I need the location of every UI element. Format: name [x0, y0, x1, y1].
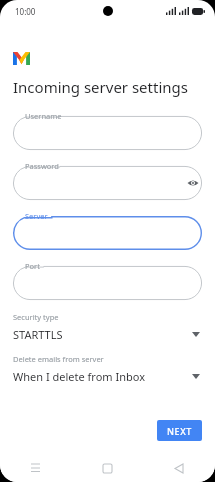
- button[interactable]: Username: [13, 110, 202, 150]
- button[interactable]: Back: [143, 454, 215, 482]
- button[interactable]: Delete emails from server: [0, 354, 215, 384]
- staticText: Port: [25, 261, 40, 271]
- staticText: Password: [25, 161, 59, 171]
- staticText: When I delete from Inbox: [13, 369, 192, 384]
- button[interactable]: NEXT: [157, 420, 202, 441]
- staticText: 10:00: [15, 6, 36, 17]
- button[interactable]: Security type: [0, 312, 215, 342]
- staticText: Server: [25, 211, 48, 221]
- staticText: STARTTLS: [13, 327, 192, 342]
- staticText: Delete emails from server: [13, 354, 104, 364]
- button[interactable]: Recents: [0, 454, 71, 482]
- button[interactable]: Port: [13, 260, 202, 300]
- staticText: Incoming server settings: [13, 77, 188, 97]
- staticText: Username: [25, 111, 62, 121]
- button[interactable]: Show password: [184, 174, 202, 192]
- button[interactable]: Server: [13, 210, 202, 250]
- button[interactable]: Password: [13, 160, 202, 200]
- staticText: Security type: [13, 312, 59, 322]
- button[interactable]: Home: [71, 454, 143, 482]
- staticText: NEXT: [167, 425, 192, 437]
